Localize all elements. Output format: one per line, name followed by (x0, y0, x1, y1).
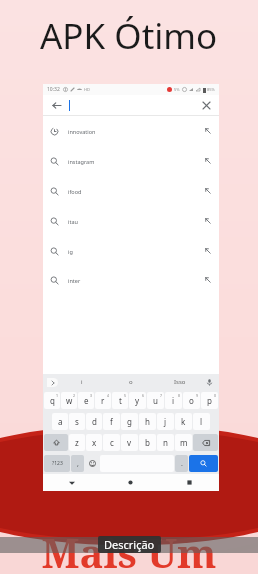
button[interactable]: i (165, 392, 182, 409)
staticText: 0 (214, 393, 217, 398)
staticText: y (135, 395, 140, 406)
button[interactable]: Isso (155, 378, 204, 386)
staticText: u (153, 395, 158, 406)
button[interactable]: Recents (160, 474, 219, 491)
button[interactable]: Emoji (85, 455, 99, 472)
staticText: 9 (196, 393, 199, 398)
button[interactable]: q (44, 392, 60, 409)
button[interactable]: t (112, 392, 128, 409)
staticText: x (92, 437, 97, 448)
button[interactable]: instagram (43, 146, 219, 176)
button[interactable]: y (129, 392, 146, 409)
button[interactable]: ig (43, 236, 219, 266)
staticText: n (163, 437, 168, 448)
staticText: ?123 (52, 460, 63, 467)
button[interactable]: More suggestions (47, 378, 58, 387)
button[interactable]: . (175, 455, 188, 472)
staticText: 7 (160, 393, 163, 398)
staticText: i (172, 395, 175, 406)
button[interactable]: l (193, 413, 210, 430)
button[interactable]: Back (49, 98, 63, 112)
staticText: m (180, 437, 188, 448)
button[interactable]: Home (101, 474, 160, 491)
staticText: z (75, 437, 79, 448)
staticText: l (200, 416, 203, 427)
button[interactable]: s (69, 413, 85, 430)
button[interactable]: Backspace (193, 434, 218, 451)
button[interactable]: c (103, 434, 120, 451)
staticText: q (50, 395, 55, 406)
button[interactable]: , (71, 455, 84, 472)
staticText: itau (68, 218, 78, 225)
button[interactable]: i (58, 378, 106, 386)
button[interactable]: ifood (43, 176, 219, 206)
staticText: inter (68, 277, 81, 284)
button[interactable]: b (139, 434, 156, 451)
button[interactable]: k (175, 413, 192, 430)
button[interactable]: r (95, 392, 111, 409)
button[interactable] (69, 95, 199, 115)
button[interactable]: o (106, 378, 155, 386)
button[interactable]: d (86, 413, 102, 430)
button[interactable]: x (86, 434, 102, 451)
staticText: ig (68, 248, 73, 255)
button[interactable]: a (52, 413, 68, 430)
button[interactable]: z (69, 434, 85, 451)
staticText: a (58, 416, 63, 427)
staticText: f (110, 416, 113, 427)
staticText: Isso (174, 378, 186, 386)
staticText: k (181, 416, 186, 427)
staticText: 2 (73, 393, 76, 398)
button[interactable]: v (121, 434, 138, 451)
button[interactable]: Clear (199, 98, 213, 112)
staticText: 10:32 (47, 86, 60, 93)
staticText: c (110, 437, 114, 448)
staticText: d (92, 416, 97, 427)
button[interactable]: h (139, 413, 156, 430)
button[interactable]: Back (43, 474, 101, 491)
staticText: 6 (142, 393, 145, 398)
button[interactable]: ?123 (44, 455, 70, 472)
staticText: , (77, 459, 79, 469)
button[interactable]: Descrição (98, 536, 161, 553)
button[interactable]: Shift (44, 434, 68, 451)
staticText: r (101, 395, 105, 406)
button[interactable]: innovation (43, 116, 219, 146)
staticText: j (164, 416, 167, 427)
button[interactable]: u (147, 392, 164, 409)
staticText: . (181, 459, 183, 469)
button[interactable]: g (121, 413, 138, 430)
staticText: APK Ótimo (40, 12, 218, 60)
staticText: 3 (90, 393, 93, 398)
staticText: b (145, 437, 150, 448)
button[interactable]: inter (43, 266, 219, 294)
staticText: o (189, 395, 194, 406)
button[interactable]: Voice input (204, 377, 215, 388)
staticText: 85% (207, 87, 215, 92)
staticText: w (66, 395, 73, 406)
staticText: 5 (124, 393, 127, 398)
button[interactable]: j (157, 413, 174, 430)
staticText: p (207, 395, 212, 406)
button[interactable]: Search (189, 455, 218, 472)
button[interactable]: m (175, 434, 192, 451)
button[interactable]: n (157, 434, 174, 451)
staticText: 4 (107, 393, 110, 398)
staticText: Mais Um Dora (0, 525, 258, 572)
button[interactable]: o (183, 392, 200, 409)
staticText: i (81, 378, 83, 386)
staticText: 8 (178, 393, 181, 398)
staticText: e (84, 395, 89, 406)
staticText: Descrição (104, 537, 155, 552)
staticText: o (129, 378, 133, 386)
button[interactable]: p (201, 392, 218, 409)
button[interactable]: w (61, 392, 77, 409)
staticText: h (145, 416, 150, 427)
staticText: innovation (68, 128, 96, 135)
button[interactable]: f (103, 413, 120, 430)
button[interactable]: e (78, 392, 94, 409)
button[interactable]: itau (43, 206, 219, 236)
staticText: HD (84, 87, 90, 92)
staticText: ifood (68, 188, 82, 195)
